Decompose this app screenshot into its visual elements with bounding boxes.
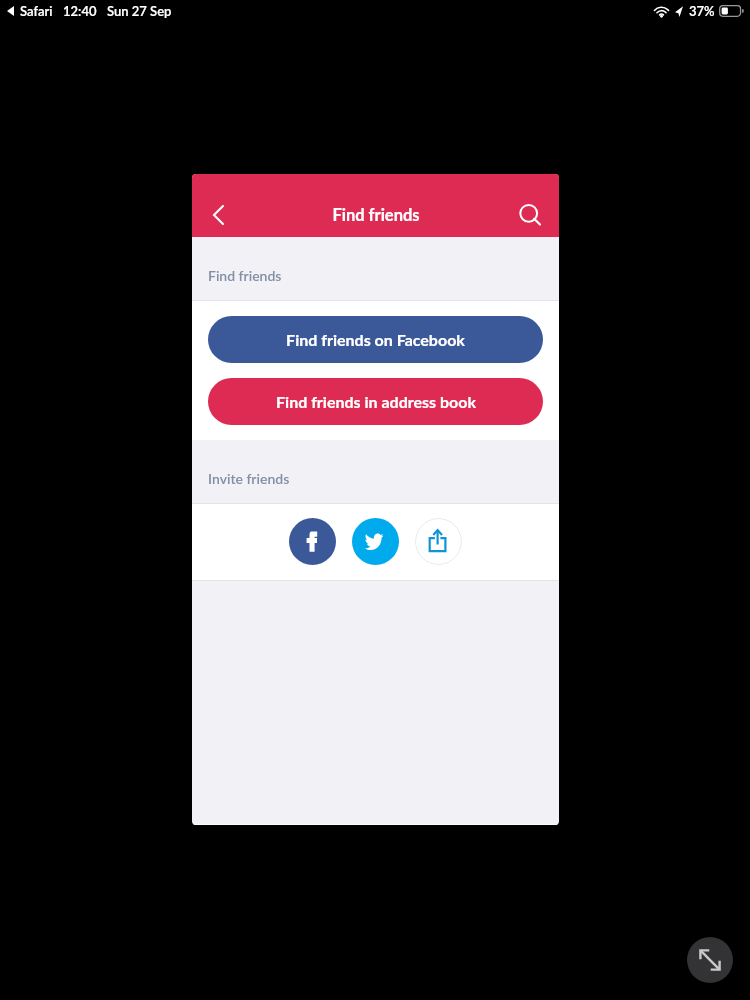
staticText: Find friends in address book (276, 392, 476, 411)
staticText: Find friends (332, 205, 420, 225)
button[interactable]: Find friends in address book (208, 378, 543, 425)
staticText: Invite friends (208, 470, 290, 487)
button[interactable]: Share on Facebook (289, 518, 336, 565)
button[interactable]: Search (509, 194, 551, 236)
button[interactable]: Share on Twitter (352, 518, 399, 565)
button[interactable]: Share (415, 518, 462, 565)
staticText: 37% (689, 3, 715, 19)
staticText: Find friends on Facebook (286, 330, 465, 349)
button[interactable]: Expand (687, 937, 733, 983)
button[interactable]: Back (197, 194, 239, 236)
staticText: Sun 27 Sep (107, 3, 172, 19)
staticText: Find friends (208, 267, 282, 284)
staticText: Safari (20, 3, 53, 19)
staticText: 12:40 (63, 3, 97, 19)
button[interactable]: Find friends on Facebook (208, 316, 543, 363)
